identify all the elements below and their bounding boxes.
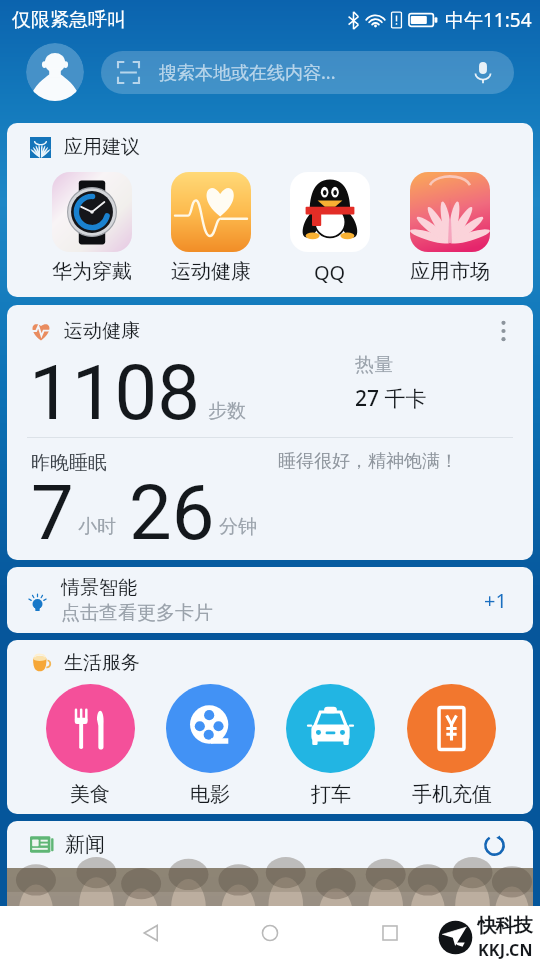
staticText: 搜索本地或在线内容... — [159, 60, 336, 85]
staticText: 步数 — [208, 399, 246, 423]
staticText: 新闻 — [65, 832, 105, 857]
button[interactable]: 华为穿戴 — [32, 172, 151, 284]
staticText: 睡得很好，精神饱满！ — [278, 450, 458, 473]
staticText: 分钟 — [219, 515, 257, 539]
staticText: KKJ.CN — [478, 939, 533, 959]
button[interactable]: 应用市场 — [390, 172, 510, 284]
staticText: 昨晚睡眠 — [31, 451, 107, 475]
staticText: 1108 — [29, 348, 200, 437]
staticText: 点击查看更多卡片 — [61, 601, 213, 625]
staticText: QQ — [314, 259, 346, 286]
button[interactable]: 美食 — [30, 684, 150, 807]
staticText: 运动健康 — [64, 319, 140, 343]
staticText: 美食 — [70, 782, 110, 807]
button[interactable]: 电影 — [150, 684, 270, 807]
button[interactable]: Profile — [26, 43, 84, 101]
button[interactable]: Recent apps — [362, 906, 418, 960]
staticText: 小时 — [78, 515, 116, 539]
staticText: 26 — [129, 468, 215, 553]
staticText: 运动健康 — [171, 259, 251, 284]
button[interactable]: 打车 — [270, 684, 391, 807]
staticText: 应用市场 — [410, 259, 490, 284]
staticText: 仅限紧急呼叫 — [12, 8, 126, 32]
staticText: 快科技 — [478, 914, 532, 938]
staticText: 热量 — [355, 353, 393, 377]
button[interactable]: 搜索本地或在线内容... — [101, 51, 514, 94]
staticText: 电影 — [190, 782, 230, 807]
staticText: 情景智能 — [61, 576, 137, 600]
button[interactable]: 运动健康 — [151, 172, 270, 284]
staticText: 应用建议 — [64, 135, 140, 159]
staticText: 手机充值 — [412, 782, 492, 807]
button[interactable]: Home — [242, 906, 298, 960]
staticText: 7 — [31, 468, 74, 553]
button[interactable]: 情景智能 — [7, 567, 533, 633]
button[interactable]: Refresh — [479, 830, 509, 860]
button[interactable]: More options — [489, 317, 517, 345]
button[interactable]: 手机充值 — [391, 684, 512, 807]
staticText: 华为穿戴 — [52, 259, 132, 284]
staticText: 中午11:54 — [445, 7, 532, 33]
staticText: 生活服务 — [64, 651, 140, 675]
staticText: 27 千卡 — [355, 384, 427, 413]
button[interactable]: QQ — [270, 172, 390, 286]
button[interactable]: Back — [123, 906, 179, 960]
staticText: 打车 — [311, 782, 351, 807]
staticText: +1 — [484, 587, 507, 614]
